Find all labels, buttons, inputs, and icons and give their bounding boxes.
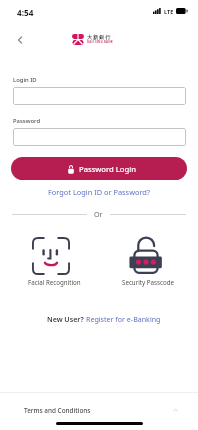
staticText: Login ID [13, 76, 37, 84]
button[interactable]: Security Passcode [116, 276, 180, 287]
staticText: Password Login [79, 164, 136, 174]
staticText: Terms and Conditions [24, 406, 91, 415]
staticText: 4:54 [17, 7, 34, 18]
staticText: LTE [164, 8, 174, 15]
staticText: Or [94, 209, 103, 219]
button[interactable]: Password Login [11, 157, 187, 180]
button[interactable]: Terms and Conditions [0, 400, 198, 420]
staticText: DAH SING BANK [87, 40, 113, 44]
button[interactable]: Facial Recognition [22, 276, 86, 287]
staticText: Forgot Login ID or Password? [48, 187, 151, 197]
button[interactable] [13, 87, 186, 105]
button[interactable] [13, 128, 186, 146]
button[interactable]: Forgot Login ID or Password? [0, 185, 198, 199]
staticText: Facial Recognition [28, 278, 81, 286]
button[interactable]: Back [12, 32, 28, 48]
staticText: New User? [47, 314, 84, 324]
button[interactable]: Register for e-Banking [86, 314, 161, 324]
staticText: Register for e-Banking [86, 314, 161, 324]
staticText: Password [13, 117, 41, 125]
staticText: 大新銀行 [87, 34, 112, 40]
staticText: Security Passcode [122, 278, 174, 286]
